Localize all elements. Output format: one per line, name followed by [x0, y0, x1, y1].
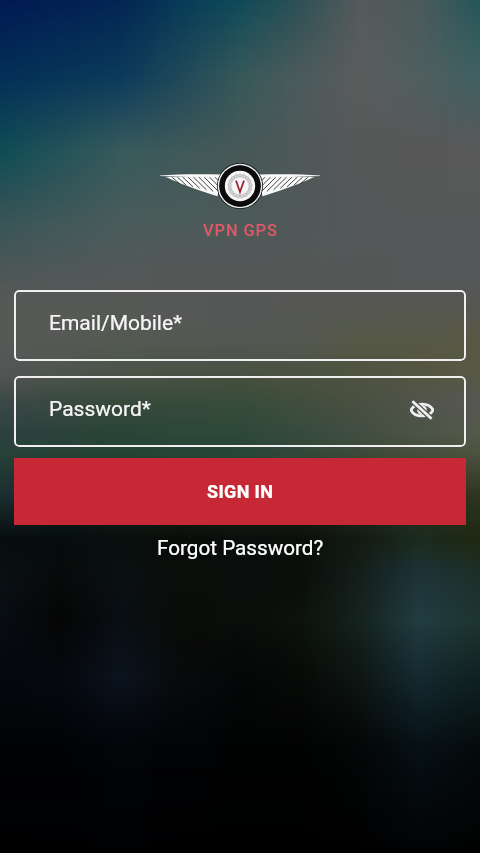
- staticText: VPN GPS: [203, 221, 278, 240]
- staticText: SIGN IN: [207, 481, 274, 502]
- button[interactable]: Password*: [14, 376, 466, 447]
- button[interactable]: Show password: [408, 396, 436, 424]
- button[interactable]: SIGN IN: [14, 458, 466, 525]
- staticText: Email/Mobile*: [49, 311, 183, 336]
- button[interactable]: Forgot Password?: [149, 532, 332, 564]
- button[interactable]: Email/Mobile*: [14, 290, 466, 361]
- staticText: Password*: [49, 397, 151, 422]
